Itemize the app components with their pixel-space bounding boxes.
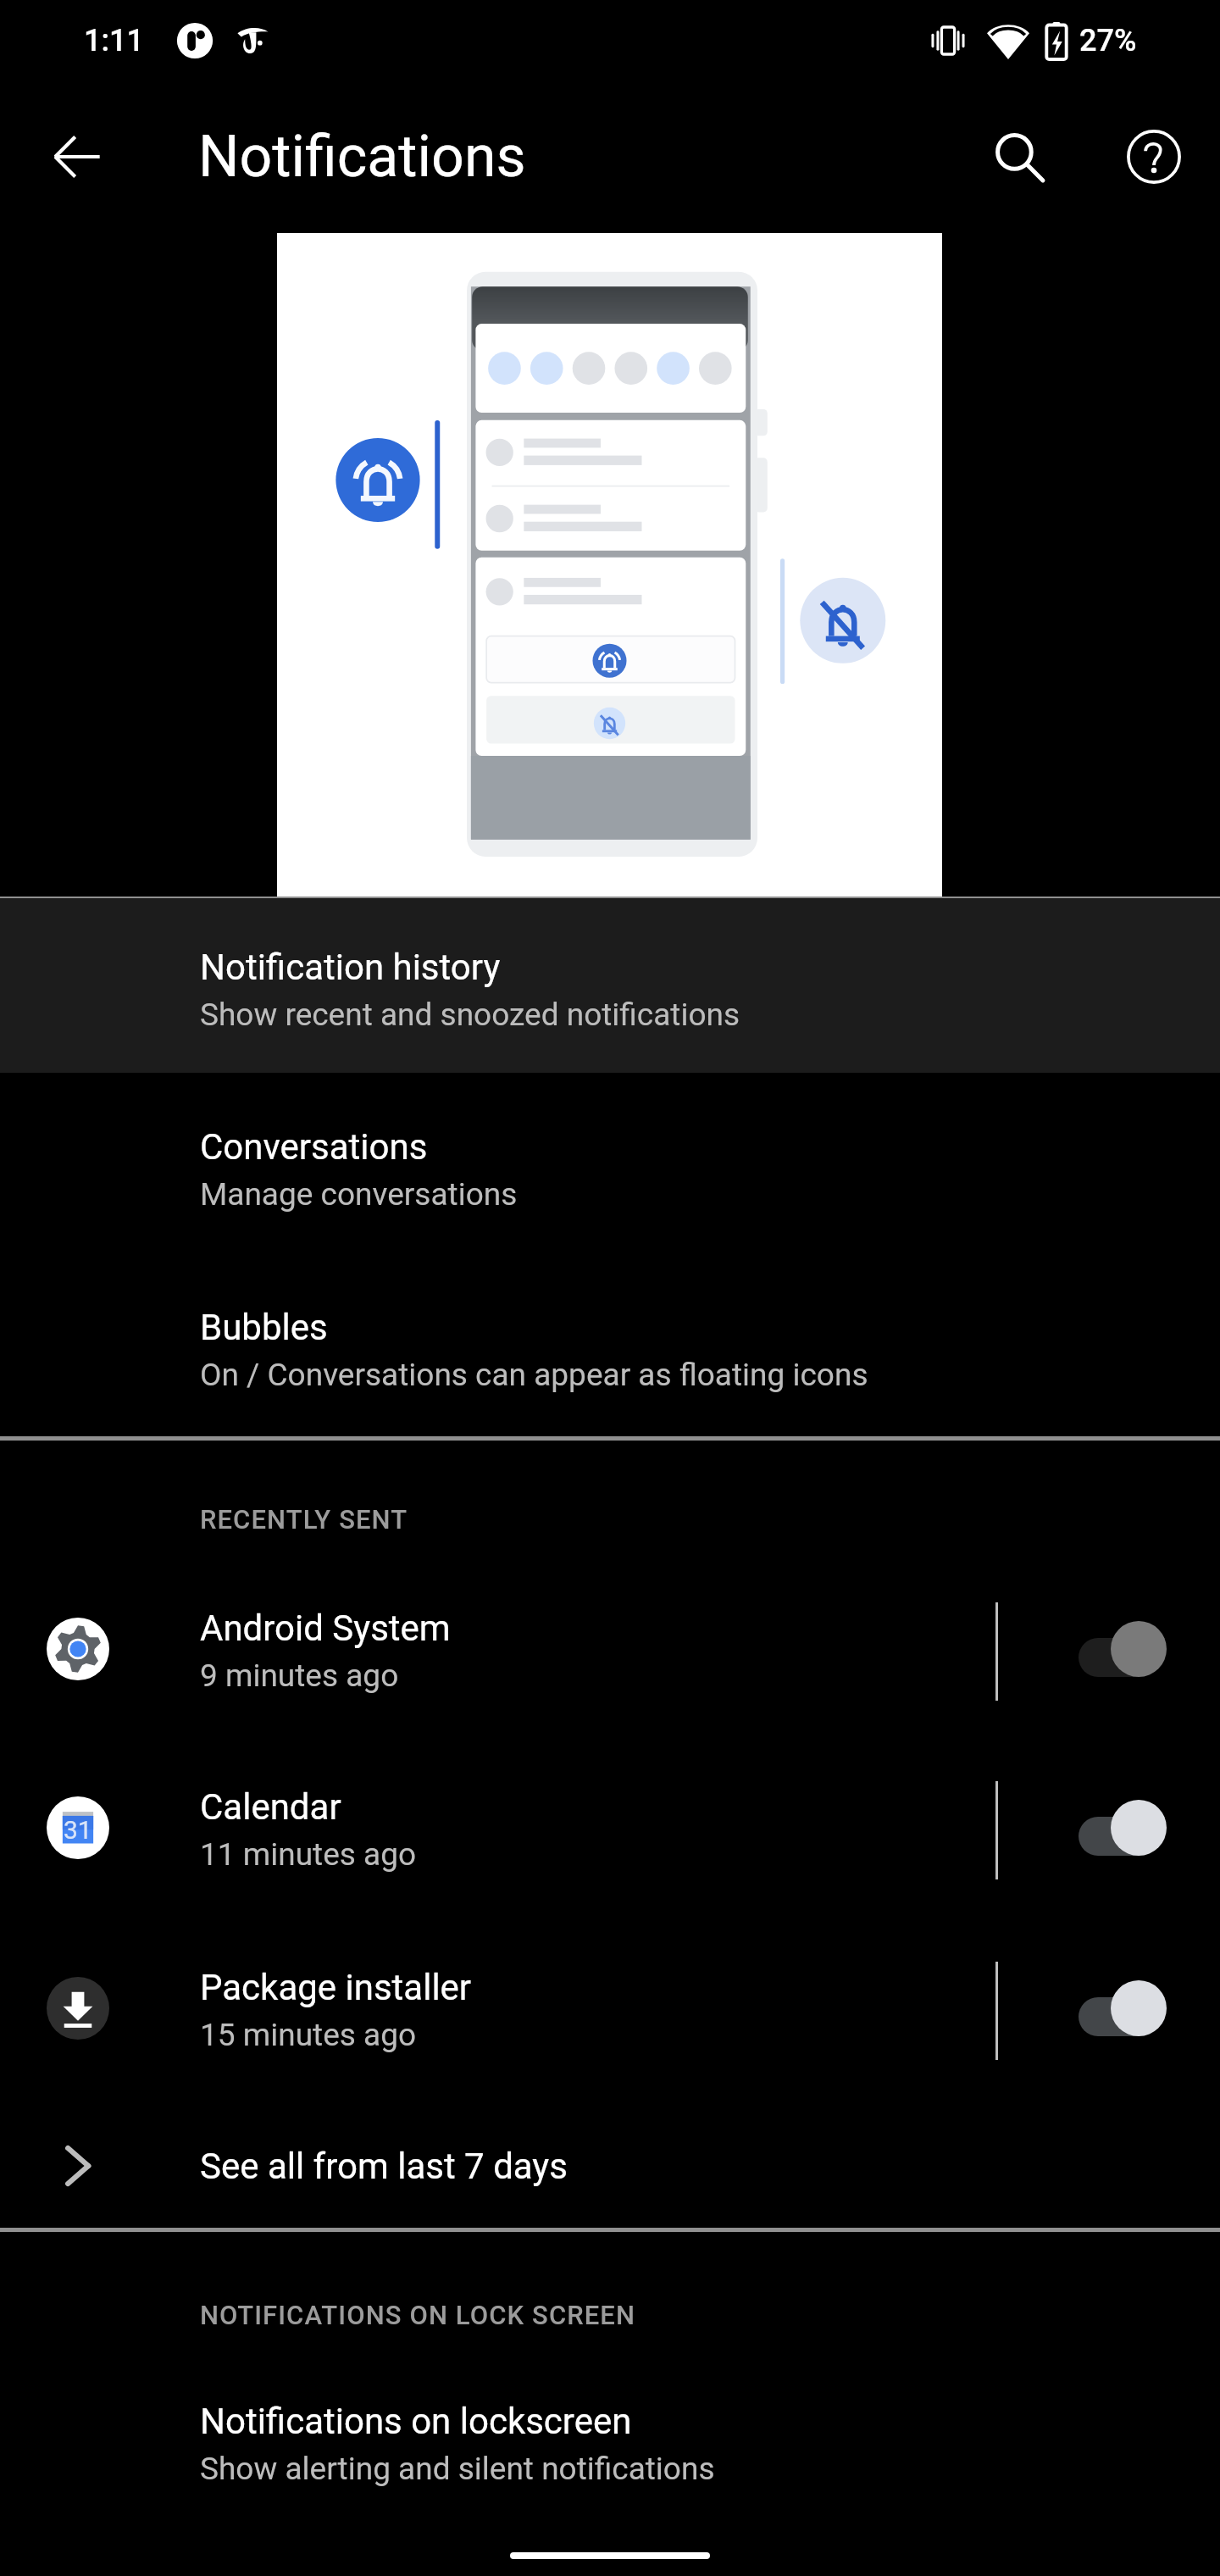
staticText: 27% (1079, 23, 1137, 58)
button[interactable]: Help (1079, 81, 1220, 232)
button[interactable]: Toggle notifications for Android System (1017, 1557, 1220, 1735)
button[interactable]: Package installer (0, 1916, 1220, 2095)
staticText: 1:11 (84, 23, 144, 58)
button[interactable]: Toggle notifications for Calendar (1017, 1735, 1220, 1914)
staticText: Conversations (200, 1126, 428, 1168)
staticText: Package installer (200, 1967, 472, 2008)
staticText: RECENTLY SENT (200, 1504, 408, 1535)
staticText: 31 (64, 1815, 92, 1845)
staticText: Calendar (200, 1786, 341, 1828)
button[interactable]: Notification history (0, 898, 1220, 1073)
staticText: 9 minutes ago (200, 1657, 399, 1694)
staticText: See all from last 7 days (200, 2146, 568, 2187)
staticText: Notification history (200, 947, 501, 988)
staticText: Android System (200, 1607, 451, 1649)
button[interactable]: Android System (0, 1557, 1220, 1735)
staticText: Notifications (198, 123, 526, 191)
button[interactable]: Search (944, 81, 1095, 232)
staticText: Notifications on lockscreen (200, 2401, 632, 2442)
staticText: On / Conversations can appear as floatin… (200, 1357, 868, 1393)
button[interactable]: Toggle notifications for Package install… (1017, 1916, 1220, 2095)
button[interactable]: Notifications on lockscreen (0, 2350, 1220, 2529)
button[interactable]: 31 (0, 1735, 1220, 1914)
staticText: Show alerting and silent notifications (200, 2451, 715, 2487)
staticText: Show recent and snoozed notifications (200, 997, 740, 1033)
button[interactable]: Bubbles (0, 1256, 1220, 1435)
staticText: Bubbles (200, 1307, 328, 1348)
staticText: 11 minutes ago (200, 1836, 417, 1873)
button[interactable]: See all from last 7 days (0, 2098, 1220, 2234)
staticText: NOTIFICATIONS ON LOCK SCREEN (200, 2300, 636, 2330)
staticText: 15 minutes ago (200, 2017, 417, 2053)
button[interactable]: Back (2, 81, 152, 232)
staticText: Manage conversations (200, 1176, 518, 1213)
button[interactable]: Conversations (0, 1075, 1220, 1255)
